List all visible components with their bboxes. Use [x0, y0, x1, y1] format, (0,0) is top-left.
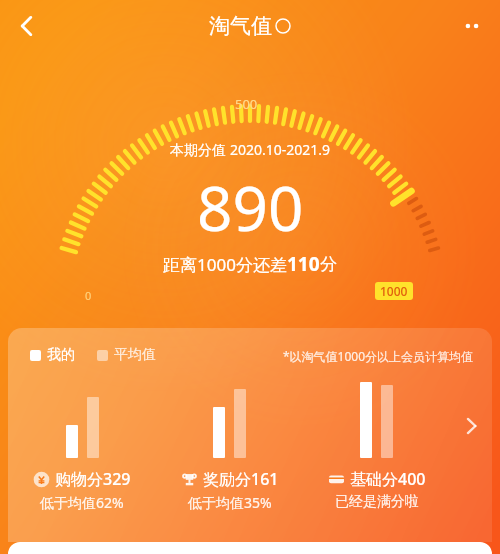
- staticText: 淘气值: [209, 13, 272, 39]
- button[interactable]: More options: [450, 4, 494, 48]
- staticText: 1000: [380, 283, 408, 299]
- button[interactable]: 基础分400: [303, 380, 450, 511]
- button[interactable]: 淘气值: [209, 13, 291, 39]
- staticText: *以淘气值1000分以上会员计算均值: [283, 348, 474, 364]
- staticText: 500: [235, 95, 258, 113]
- button[interactable]: Next: [450, 380, 492, 500]
- button[interactable]: 购物分329: [8, 380, 156, 512]
- staticText: 890: [197, 165, 304, 249]
- button[interactable]: 我的: [8, 328, 492, 542]
- button[interactable]: 奖励分161: [156, 380, 303, 512]
- staticText: 平均值: [114, 346, 156, 364]
- staticText: 距离1000分还差: [163, 253, 287, 276]
- staticText: 购物分329: [55, 468, 131, 490]
- staticText: 低于均值62%: [40, 493, 124, 512]
- staticText: 110: [287, 251, 320, 277]
- button[interactable]: Back: [4, 3, 50, 49]
- staticText: 低于均值35%: [188, 493, 272, 512]
- staticText: 本期分值: [170, 140, 230, 159]
- staticText: 分: [320, 254, 337, 275]
- staticText: 2020.10-2021.9: [230, 140, 331, 159]
- staticText: 0: [85, 288, 92, 303]
- staticText: 奖励分161: [203, 468, 279, 490]
- staticText: 我的: [47, 346, 75, 364]
- staticText: 已经是满分啦: [335, 493, 419, 511]
- staticText: 基础分400: [350, 468, 426, 490]
